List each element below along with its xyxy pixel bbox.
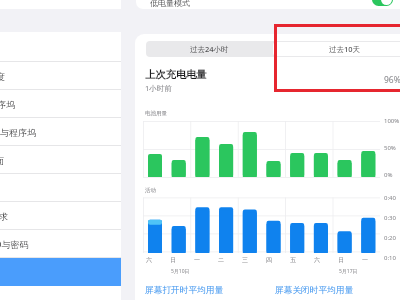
staticText: 0:30 xyxy=(384,214,396,222)
button[interactable] xyxy=(0,174,121,202)
staticText: 五 xyxy=(290,256,296,264)
staticText: 日 xyxy=(170,256,176,264)
staticText: 显示与亮度 xyxy=(0,71,5,82)
button[interactable]: 屏幕打开时平均用量 xyxy=(145,285,224,296)
staticText: 主屏幕与程序坞 xyxy=(0,99,15,110)
staticText: 5月10日 xyxy=(171,268,190,275)
staticText: 搜索需求 xyxy=(0,211,8,222)
staticText: 六 xyxy=(314,256,320,264)
staticText: 0% xyxy=(384,171,393,179)
button[interactable]: 过去10天 xyxy=(273,42,400,56)
staticText: 5月17日 xyxy=(339,268,358,275)
button[interactable]: 主屏幕与程序坞 xyxy=(0,90,121,118)
staticText: 96% xyxy=(384,74,400,86)
staticText: 辅助功能与程序坞 xyxy=(0,127,36,138)
button[interactable]: 显示与亮度 xyxy=(0,62,121,90)
staticText: 四 xyxy=(266,256,272,264)
staticText: 活动 xyxy=(145,187,156,194)
staticText: 一 xyxy=(194,256,200,264)
button[interactable]: 过去24小时 xyxy=(146,41,272,57)
staticText: 墙纸与桌面 xyxy=(0,155,4,166)
staticText: 0:40 xyxy=(384,194,396,202)
staticText: 六 xyxy=(146,256,152,264)
staticText: 100% xyxy=(384,117,400,125)
button[interactable]: Low power mode toggle xyxy=(372,0,393,6)
staticText: 一 xyxy=(362,256,368,264)
staticText: 二 xyxy=(218,256,224,264)
button[interactable]: 面容ID与密码 xyxy=(0,230,121,258)
staticText: 1小时前 xyxy=(145,83,172,93)
staticText: 0:20 xyxy=(384,234,396,242)
button[interactable]: 辅助功能与程序坞 xyxy=(0,118,121,146)
button[interactable]: 屏幕关闭时平均用量 xyxy=(275,285,354,296)
staticText: 屏幕打开时平均用量 xyxy=(145,285,224,296)
staticText: 上次充电电量 xyxy=(145,68,207,81)
staticText: 电池用量 xyxy=(145,110,167,117)
staticText: 过去10天 xyxy=(329,44,361,54)
staticText: 三 xyxy=(242,256,248,264)
staticText: 过去24小时 xyxy=(190,44,229,54)
staticText: 低电量模式 xyxy=(150,0,190,8)
staticText: 50% xyxy=(384,144,396,152)
staticText: 0:10 xyxy=(384,254,396,262)
staticText: 面容ID与密码 xyxy=(0,238,29,250)
staticText: 屏幕关闭时平均用量 xyxy=(275,285,354,296)
staticText: 日 xyxy=(338,256,344,264)
button[interactable]: 搜索需求 xyxy=(0,202,121,230)
button[interactable] xyxy=(0,34,121,62)
button[interactable]: 墙纸与桌面 xyxy=(0,146,121,174)
